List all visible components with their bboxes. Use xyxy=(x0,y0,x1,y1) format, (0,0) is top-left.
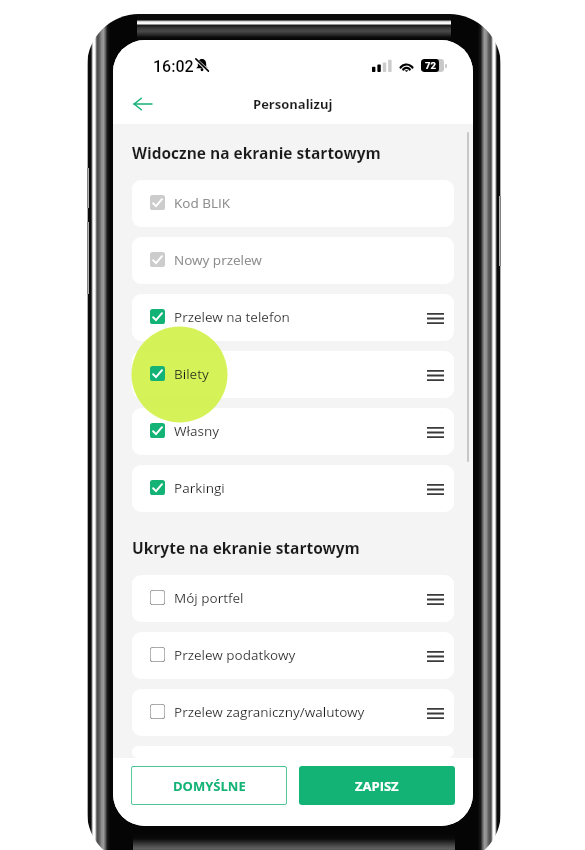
button[interactable]: Bilety xyxy=(132,351,454,398)
staticText: Widoczne na ekranie startowym xyxy=(132,142,381,163)
staticText: Nowy przelew xyxy=(174,251,262,269)
staticText: Parkingi xyxy=(174,479,225,497)
button[interactable]: Reorder xyxy=(422,476,448,502)
staticText: ZAPISZ xyxy=(355,777,399,795)
staticText: Własny xyxy=(174,422,220,440)
button[interactable]: Reorder xyxy=(422,700,448,726)
staticText: Bilety xyxy=(174,365,209,383)
button[interactable]: Mój portfel xyxy=(132,575,454,622)
button[interactable]: DOMYŚLNE xyxy=(131,766,287,805)
staticText: Mój portfel xyxy=(174,589,244,607)
button[interactable]: Przelew zagraniczny/walutowy xyxy=(132,689,454,736)
button[interactable]: ZAPISZ xyxy=(299,766,455,805)
button[interactable]: Reorder xyxy=(422,362,448,388)
staticText: DOMYŚLNE xyxy=(173,777,246,795)
button[interactable]: Reorder xyxy=(422,419,448,445)
staticText: Personalizuj xyxy=(253,95,333,113)
button[interactable]: Nowy przelew xyxy=(132,237,454,284)
button[interactable]: Reorder xyxy=(422,643,448,669)
staticText: 16:02 xyxy=(153,57,194,76)
staticText: Przelew zagraniczny/walutowy xyxy=(174,703,365,721)
staticText: Kod BLIK xyxy=(174,194,231,212)
staticText: Ukryte na ekranie startowym xyxy=(132,537,360,558)
staticText: Przelew podatkowy xyxy=(174,646,296,664)
button[interactable]: Parkingi xyxy=(132,465,454,512)
button[interactable]: Przelew na telefon xyxy=(132,294,454,341)
button[interactable]: Własny xyxy=(132,408,454,455)
button[interactable]: Kod BLIK xyxy=(132,180,454,227)
staticText: 72 xyxy=(425,60,436,71)
staticText: Przelew na telefon xyxy=(174,308,290,326)
button[interactable]: Reorder xyxy=(422,586,448,612)
button[interactable]: Przelew podatkowy xyxy=(132,632,454,679)
button[interactable]: Back xyxy=(125,87,159,121)
button[interactable]: Reorder xyxy=(422,305,448,331)
